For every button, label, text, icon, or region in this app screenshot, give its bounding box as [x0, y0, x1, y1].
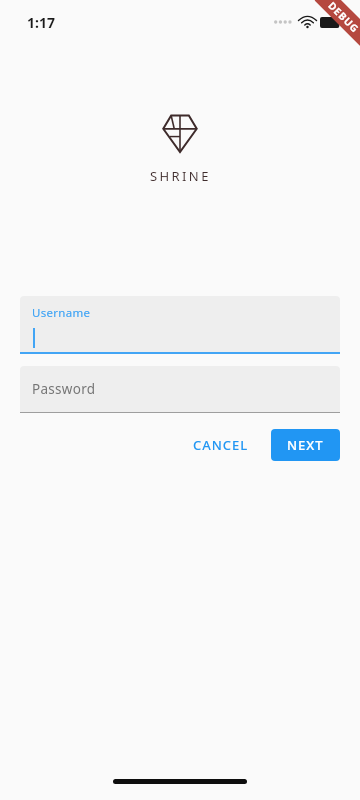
button[interactable]: Username	[20, 296, 340, 352]
button[interactable]: NEXT	[271, 429, 340, 461]
button[interactable]: CANCEL	[179, 427, 263, 463]
staticText: Password	[32, 380, 96, 398]
staticText: CANCEL	[193, 436, 249, 454]
staticText: Username	[32, 305, 91, 321]
staticText: DEBUG	[325, 0, 360, 36]
staticText: 1:17	[27, 13, 55, 32]
button[interactable]: Password	[20, 366, 340, 412]
staticText: NEXT	[287, 436, 324, 454]
staticText: SHRINE	[150, 167, 211, 185]
